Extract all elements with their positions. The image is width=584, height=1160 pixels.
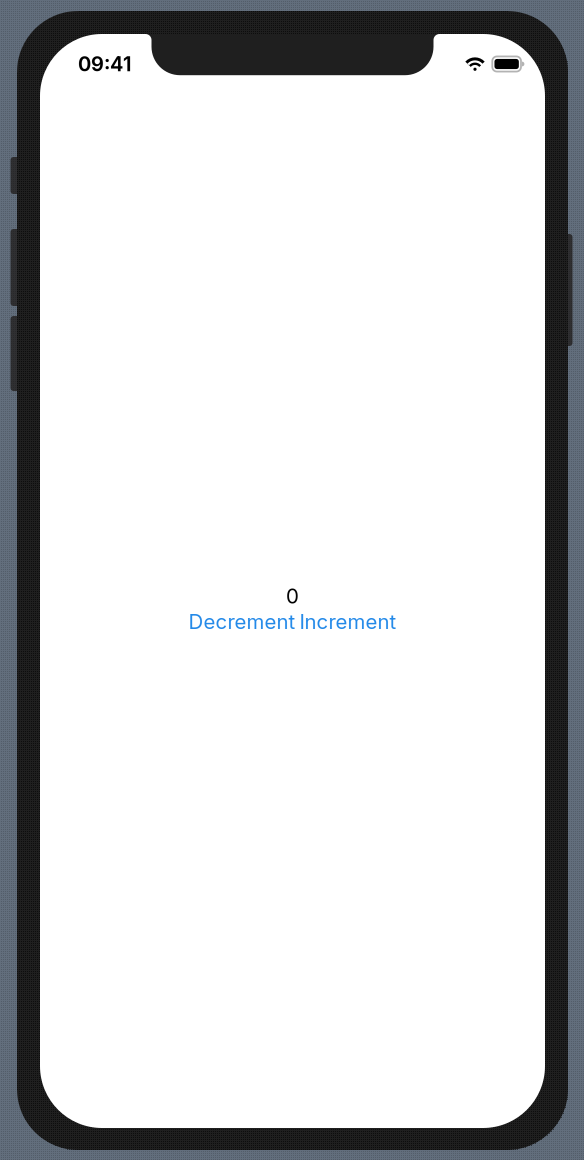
staticText: 0 xyxy=(286,584,299,608)
staticText: 09:41 xyxy=(78,52,131,76)
button[interactable]: Increment xyxy=(299,609,396,634)
button[interactable]: Decrement xyxy=(188,609,295,634)
staticText: Increment xyxy=(299,609,396,634)
staticText: Decrement xyxy=(188,609,295,634)
